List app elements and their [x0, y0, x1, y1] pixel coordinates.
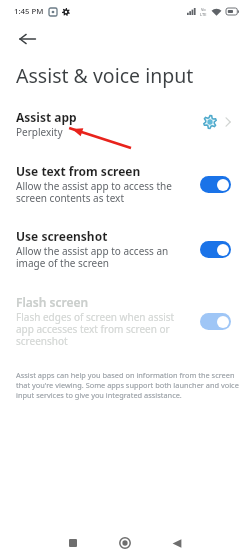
button[interactable]: Toggle: [200, 241, 231, 258]
staticText: Assist app: [16, 109, 77, 125]
staticText: Allow the assist app to access an image …: [16, 244, 169, 270]
staticText: Assist apps can help you based on inform…: [16, 370, 235, 380]
button[interactable]: Back: [166, 532, 188, 554]
button[interactable]: Home: [114, 532, 136, 554]
staticText: Assist & voice input: [16, 62, 194, 89]
button[interactable]: Assist app: [0, 93, 250, 145]
button[interactable]: Toggle: [200, 313, 231, 330]
staticText: Use text from screen: [16, 163, 141, 179]
button[interactable]: Use text from screen: [0, 145, 250, 205]
staticText: Perplexity: [16, 125, 63, 139]
staticText: Flash screen: [16, 294, 89, 310]
staticText: input services to give you integrated as…: [16, 390, 182, 400]
button[interactable]: Recent apps: [62, 532, 84, 554]
button[interactable]: Toggle: [200, 176, 231, 193]
button[interactable]: Use screenshot: [0, 205, 250, 270]
staticText: Allow the assist app to access the scree…: [16, 179, 172, 205]
staticText: Vo: [201, 7, 206, 12]
button[interactable]: Navigate up: [14, 26, 40, 52]
button[interactable]: Assist app settings: [199, 111, 221, 133]
staticText: 1:45 PM: [14, 6, 44, 17]
staticText: LTE: [200, 12, 207, 17]
staticText: Flash edges of screen when assist app ac…: [16, 310, 175, 348]
button[interactable]: Flash screen: [0, 270, 250, 348]
staticText: that you're viewing. Some apps support b…: [16, 380, 239, 390]
staticText: Use screenshot: [16, 228, 108, 244]
